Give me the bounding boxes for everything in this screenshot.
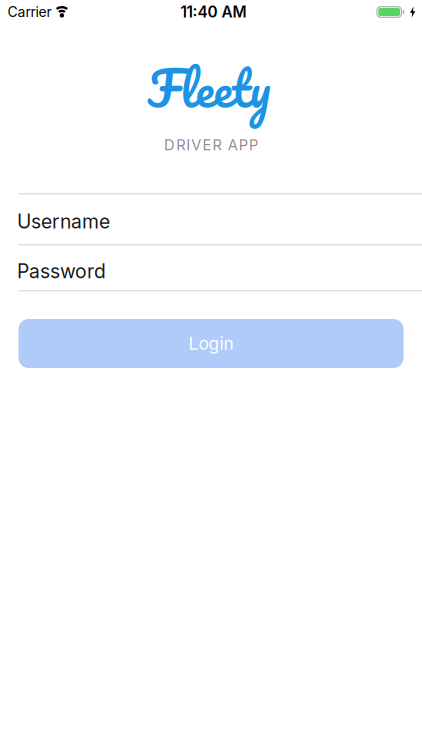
- staticText: 11:40 AM: [180, 3, 246, 21]
- staticText: E: [202, 136, 211, 154]
- staticText: Fleety: [147, 47, 270, 129]
- staticText: Password: [17, 260, 106, 283]
- staticText: Carrier: [7, 3, 51, 20]
- button[interactable]: Login: [18, 319, 403, 368]
- staticText: P: [249, 136, 258, 154]
- staticText: Login: [188, 333, 233, 354]
- staticText: I: [186, 136, 190, 154]
- staticText: D: [164, 136, 175, 154]
- staticText: P: [239, 136, 248, 154]
- button[interactable]: Password: [0, 245, 422, 290]
- button[interactable]: Username: [0, 194, 422, 244]
- staticText: Username: [17, 210, 110, 233]
- staticText: R: [176, 136, 185, 154]
- staticText: A: [228, 136, 238, 154]
- staticText: R: [213, 136, 222, 154]
- staticText: V: [191, 136, 201, 154]
